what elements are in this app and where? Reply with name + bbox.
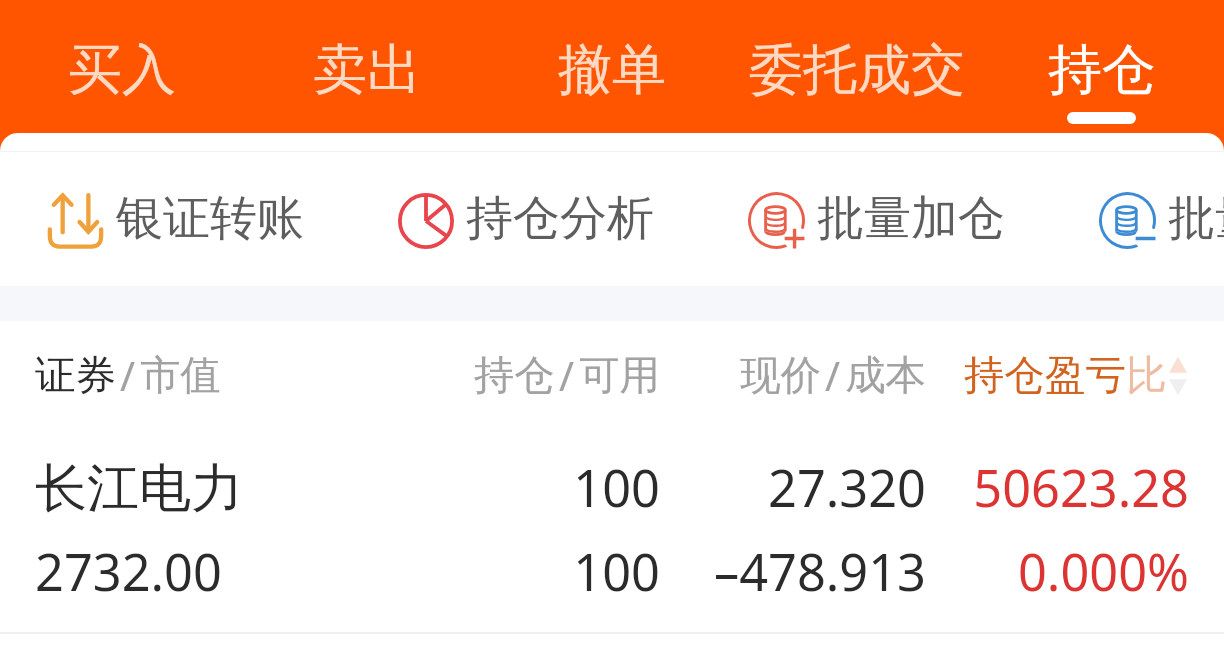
staticText: 卖出: [313, 36, 421, 104]
button[interactable]: 证券: [35, 348, 463, 403]
staticText: 持仓: [474, 350, 555, 401]
button[interactable]: 批量减仓: [1099, 191, 1224, 250]
staticText: /: [825, 348, 841, 403]
staticText: 长江电力: [35, 456, 463, 522]
staticText: 批量减仓: [1168, 189, 1224, 248]
staticText: /: [559, 348, 575, 403]
button[interactable]: 持仓分析: [398, 191, 654, 250]
staticText: 持仓分析: [466, 189, 654, 248]
staticText: 撤单: [558, 36, 666, 104]
button[interactable]: 现价: [660, 348, 926, 403]
button[interactable]: 长江电力: [0, 429, 1224, 632]
staticText: 批量加仓: [817, 189, 1005, 248]
staticText: 100: [463, 453, 660, 522]
staticText: 0.000%: [926, 537, 1189, 606]
staticText: 成本: [845, 350, 926, 401]
button[interactable]: 撤单: [489, 0, 734, 133]
button[interactable]: 持仓: [979, 0, 1224, 133]
other: 银证转账: [47, 194, 104, 248]
staticText: /: [120, 348, 136, 403]
other: 持仓分析: [398, 193, 454, 249]
button[interactable]: 买入: [0, 0, 244, 133]
staticText: 银证转账: [116, 189, 304, 248]
button[interactable]: 银证转账: [47, 191, 304, 250]
other: 批量加仓: [748, 192, 805, 249]
button[interactable]: 卖出: [244, 0, 489, 133]
staticText: 委托成交: [749, 36, 965, 104]
other: 排序: [1167, 356, 1189, 396]
staticText: 100: [463, 537, 660, 606]
button[interactable]: 批量加仓: [748, 191, 1005, 250]
staticText: 证券: [35, 350, 116, 401]
button[interactable]: 持仓盈亏: [926, 350, 1189, 401]
staticText: 现价: [740, 350, 821, 401]
staticText: 比: [1126, 350, 1167, 401]
staticText: 买入: [68, 36, 176, 104]
staticText: 2732.00: [35, 537, 463, 606]
other: 批量减仓: [1099, 192, 1156, 249]
staticText: –478.913: [660, 537, 926, 606]
staticText: 50623.28: [926, 453, 1189, 522]
button[interactable]: 持仓: [463, 348, 660, 403]
staticText: 可用: [579, 350, 660, 401]
staticText: 持仓: [1048, 36, 1156, 104]
staticText: 27.320: [660, 453, 926, 522]
staticText: 持仓盈亏: [964, 350, 1126, 401]
staticText: 市值: [140, 350, 221, 401]
button[interactable]: 委托成交: [734, 0, 979, 133]
